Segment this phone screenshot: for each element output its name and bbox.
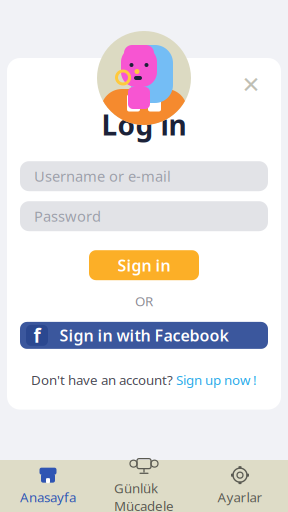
- button[interactable]: Günlük Mücadele: [96, 460, 192, 512]
- staticText: OR: [135, 292, 153, 310]
- staticText: Sign in with Facebook: [59, 325, 228, 346]
- button[interactable]: Sign in: [89, 250, 199, 280]
- staticText: Username or e-mail: [34, 166, 171, 186]
- button[interactable]: f: [20, 322, 268, 349]
- staticText: Don't have an account?: [31, 371, 173, 389]
- button[interactable]: Close: [236, 70, 266, 100]
- staticText: Password: [34, 206, 101, 226]
- staticText: Anasayfa: [20, 488, 76, 506]
- staticText: Sign up now !: [176, 371, 257, 389]
- staticText: Ayarlar: [217, 488, 262, 506]
- staticText: Günlük Mücadele: [114, 479, 174, 512]
- staticText: Log in: [101, 106, 186, 143]
- staticText: ✕: [241, 72, 260, 98]
- button[interactable]: Anasayfa: [0, 460, 96, 512]
- staticText: f: [33, 323, 40, 348]
- button[interactable]: Don't have an account?: [25, 368, 263, 392]
- button[interactable]: Ayarlar: [192, 460, 288, 512]
- staticText: Sign in: [117, 255, 170, 276]
